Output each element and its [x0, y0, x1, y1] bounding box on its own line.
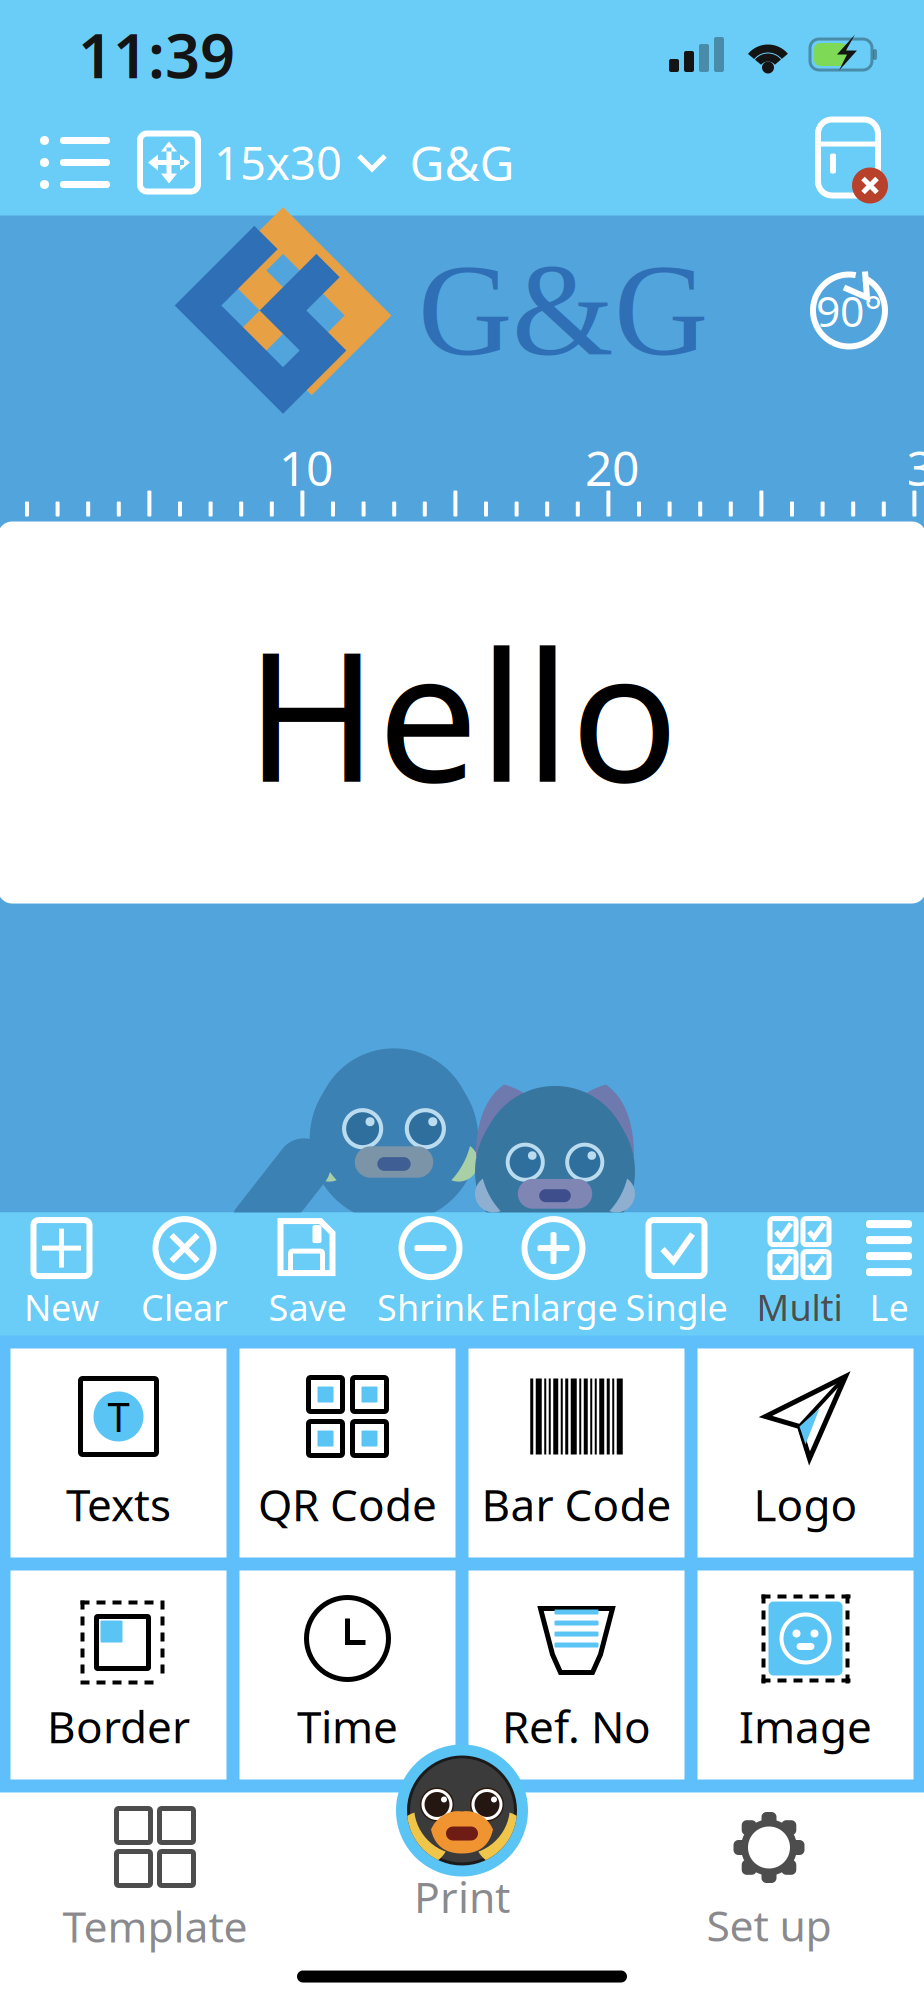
staticText: Ref. No: [502, 1697, 651, 1755]
button[interactable]: Print: [396, 1744, 528, 1876]
staticText: Save: [268, 1283, 346, 1331]
staticText: 10: [279, 435, 333, 499]
button[interactable]: Multi: [738, 1212, 861, 1335]
button[interactable]: 15x30: [134, 122, 394, 203]
button[interactable]: Template: [0, 1792, 310, 1958]
staticText: 11:39: [78, 14, 235, 95]
staticText: 20: [585, 435, 639, 499]
button[interactable]: New: [0, 1212, 123, 1335]
staticText: Border: [47, 1697, 190, 1755]
staticText: Image: [739, 1697, 872, 1755]
staticText: New: [24, 1283, 99, 1331]
staticText: Bar Code: [481, 1475, 671, 1533]
button[interactable]: Border: [10, 1570, 226, 1779]
button[interactable]: Printer not connected: [808, 117, 890, 207]
button[interactable]: T: [10, 1348, 226, 1557]
staticText: 15x30: [214, 132, 342, 193]
staticText: T: [107, 1390, 129, 1443]
button[interactable]: Logo: [697, 1348, 913, 1557]
staticText: Hello: [245, 594, 678, 831]
button[interactable]: Clear: [123, 1212, 246, 1335]
button[interactable]: Shrink: [369, 1212, 492, 1335]
button[interactable]: Ref. No: [468, 1570, 684, 1779]
staticText: Logo: [753, 1475, 857, 1533]
staticText: Print: [414, 1868, 510, 1925]
staticText: Single: [625, 1283, 727, 1331]
button[interactable]: Save: [246, 1212, 369, 1335]
button[interactable]: Time: [239, 1570, 455, 1779]
staticText: Set up: [706, 1896, 831, 1953]
staticText: Template: [62, 1897, 247, 1954]
button[interactable]: Image: [697, 1570, 913, 1779]
button[interactable]: Rotate 90 degrees: [804, 265, 894, 355]
button[interactable]: Enlarge: [492, 1212, 615, 1335]
staticText: Clear: [141, 1283, 228, 1331]
button[interactable]: Le: [861, 1212, 917, 1335]
button[interactable]: Bar Code: [468, 1348, 684, 1557]
staticText: Enlarge: [489, 1283, 617, 1331]
staticText: 90°: [816, 282, 882, 339]
button[interactable]: Single: [615, 1212, 738, 1335]
staticText: Texts: [66, 1475, 171, 1533]
staticText: G&G: [409, 131, 514, 194]
button[interactable]: QR Code: [239, 1348, 455, 1557]
button[interactable]: Set up: [614, 1792, 924, 1958]
staticText: Multi: [756, 1283, 842, 1331]
staticText: 3: [906, 435, 924, 499]
staticText: Le: [869, 1283, 908, 1331]
staticText: QR Code: [258, 1475, 437, 1533]
staticText: G&G: [418, 238, 708, 383]
staticText: Shrink: [377, 1283, 484, 1331]
staticText: Time: [297, 1697, 398, 1755]
button[interactable]: Saved labels: [36, 116, 114, 209]
